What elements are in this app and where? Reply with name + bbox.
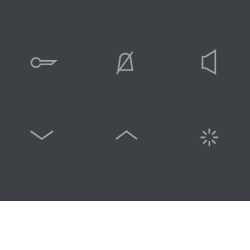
button[interactable]: Volume xyxy=(180,33,238,91)
button[interactable]: Scroll down xyxy=(13,106,71,164)
button[interactable]: Scroll up xyxy=(98,106,156,164)
button[interactable]: Mute notifications xyxy=(96,33,154,91)
button[interactable]: Unlock xyxy=(7,34,65,92)
button[interactable]: Brightness xyxy=(180,108,238,166)
